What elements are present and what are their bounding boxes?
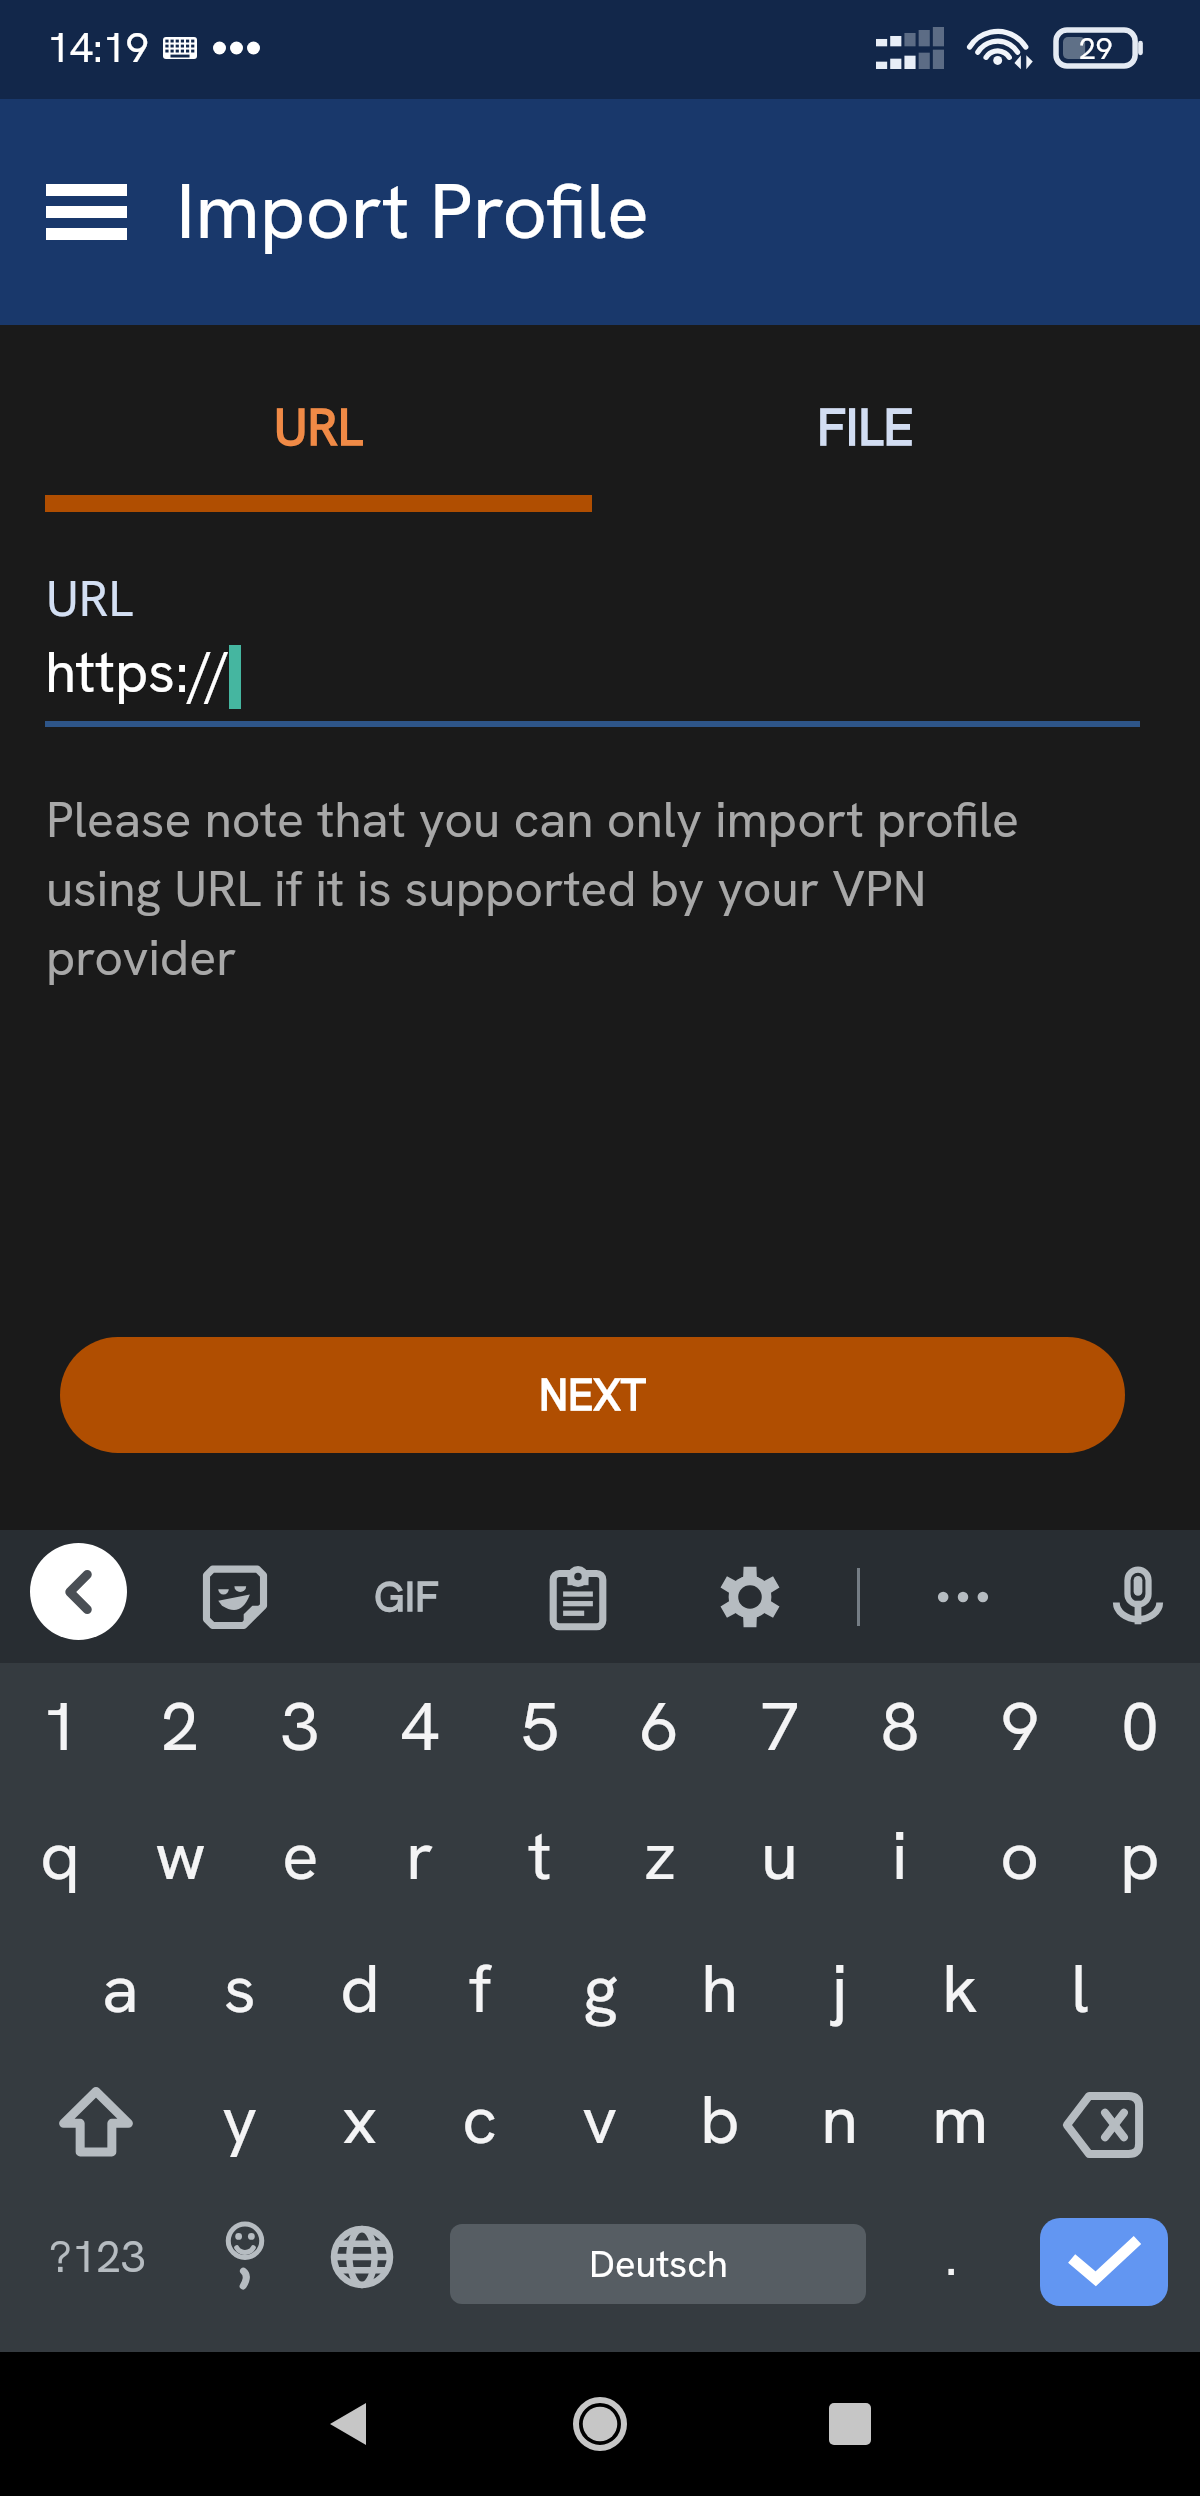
staticText: 0	[1121, 1682, 1160, 1771]
staticText: 5	[521, 1682, 560, 1771]
button[interactable]: v	[540, 2054, 660, 2185]
staticText: p	[1120, 1811, 1160, 1900]
button[interactable]: Clipboard	[528, 1530, 628, 1663]
button[interactable]: s	[180, 1922, 300, 2054]
button[interactable]: .	[891, 2173, 1011, 2340]
staticText: s	[224, 1944, 256, 2033]
button[interactable]: Emoji	[185, 2173, 305, 2340]
staticText: q	[40, 1811, 80, 1900]
staticText: .	[945, 2223, 958, 2291]
staticText: ?123	[49, 2228, 146, 2285]
button[interactable]: d	[300, 1922, 420, 2054]
staticText: https://	[45, 635, 231, 709]
staticText: 7	[761, 1682, 800, 1771]
staticText: 3	[281, 1682, 320, 1771]
button[interactable]: 3	[240, 1663, 360, 1789]
staticText: l	[1071, 1944, 1090, 2033]
staticText: a	[102, 1944, 139, 2033]
button[interactable]: j	[780, 1922, 900, 2054]
staticText: 4	[401, 1682, 440, 1771]
staticText: i	[892, 1811, 908, 1900]
button[interactable]: Change language	[305, 2173, 425, 2340]
staticText: v	[582, 2075, 618, 2164]
button[interactable]: 4	[360, 1663, 480, 1789]
staticText: 6	[641, 1682, 680, 1771]
staticText: m	[932, 2075, 989, 2164]
staticText: j	[832, 1944, 848, 2033]
staticText: Please note that you can only import pro…	[46, 787, 1076, 990]
button[interactable]: More options	[913, 1530, 1013, 1663]
staticText: e	[282, 1811, 319, 1900]
button[interactable]: z	[600, 1789, 720, 1922]
button[interactable]: URL	[45, 344, 592, 509]
button[interactable]: m	[900, 2054, 1020, 2185]
button[interactable]: GIF	[351, 1530, 461, 1663]
button[interactable]: a	[60, 1922, 180, 2054]
button[interactable]: w	[120, 1789, 240, 1922]
button[interactable]: l	[1020, 1922, 1140, 2054]
button[interactable]: 2	[120, 1663, 240, 1789]
button[interactable]: r	[360, 1789, 480, 1922]
button[interactable]: Back	[293, 2369, 403, 2479]
button[interactable]: i	[840, 1789, 960, 1922]
staticText: NEXT	[539, 1367, 647, 1423]
button[interactable]: Backspace	[1020, 2054, 1200, 2185]
button[interactable]: n	[780, 2054, 900, 2185]
button[interactable]: 1	[0, 1663, 120, 1789]
button[interactable]: Back	[30, 1543, 127, 1640]
button[interactable]: k	[900, 1922, 1020, 2054]
button[interactable]: Settings	[700, 1530, 800, 1663]
button[interactable]: Stickers	[185, 1530, 285, 1663]
button[interactable]: x	[300, 2054, 420, 2185]
button[interactable]: Deutsch	[450, 2224, 866, 2304]
button[interactable]: y	[180, 2054, 300, 2185]
button[interactable]: Shift	[0, 2054, 180, 2185]
button[interactable]: t	[480, 1789, 600, 1922]
staticText: FILE	[817, 394, 914, 460]
staticText: t	[528, 1811, 552, 1900]
staticText: k	[942, 1944, 979, 2033]
button[interactable]: FILE	[592, 344, 1139, 509]
staticText: URL	[274, 394, 363, 460]
staticText: y	[222, 2075, 258, 2164]
button[interactable]: 0	[1080, 1663, 1200, 1789]
staticText: u	[761, 1811, 799, 1900]
button[interactable]: ?123	[20, 2173, 175, 2340]
staticText: Deutsch	[589, 2239, 728, 2289]
button[interactable]: o	[960, 1789, 1080, 1922]
staticText: Import Profile	[176, 160, 650, 262]
button[interactable]: 9	[960, 1663, 1080, 1789]
button[interactable]: h	[660, 1922, 780, 2054]
staticText: GIF	[374, 1569, 439, 1624]
staticText: d	[340, 1944, 380, 2033]
button[interactable]: b	[660, 2054, 780, 2185]
button[interactable]: NEXT	[60, 1337, 1125, 1453]
button[interactable]: Open navigation menu	[19, 99, 153, 325]
button[interactable]: f	[420, 1922, 540, 2054]
button[interactable]: 6	[600, 1663, 720, 1789]
staticText: 14:19	[47, 21, 149, 74]
staticText: 8	[881, 1682, 920, 1771]
staticText: URL	[46, 566, 134, 631]
button[interactable]: 5	[480, 1663, 600, 1789]
staticText: c	[462, 2075, 498, 2164]
staticText: 2	[161, 1682, 200, 1771]
button[interactable]: g	[540, 1922, 660, 2054]
button[interactable]: Voice input	[1088, 1530, 1188, 1663]
staticText: n	[821, 2075, 859, 2164]
button[interactable]: e	[240, 1789, 360, 1922]
button[interactable]: Home	[545, 2369, 655, 2479]
staticText: w	[155, 1811, 206, 1900]
staticText: b	[700, 2075, 740, 2164]
staticText: x	[342, 2075, 378, 2164]
button[interactable]: c	[420, 2054, 540, 2185]
button[interactable]: p	[1080, 1789, 1200, 1922]
staticText: f	[469, 1944, 492, 2033]
button[interactable]: q	[0, 1789, 120, 1922]
button[interactable]: 8	[840, 1663, 960, 1789]
button[interactable]: Recent apps	[795, 2369, 905, 2479]
button[interactable]: Enter	[1040, 2218, 1168, 2306]
staticText: h	[701, 1944, 739, 2033]
button[interactable]: u	[720, 1789, 840, 1922]
button[interactable]: 7	[720, 1663, 840, 1789]
